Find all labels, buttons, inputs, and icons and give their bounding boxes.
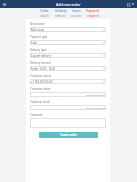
staticText: address <box>55 14 66 18</box>
staticText: in order <box>71 14 82 18</box>
staticText: Delivery interval <box>30 61 51 65</box>
staticText: Create order <box>60 133 77 137</box>
staticText: Select customer <box>86 93 105 96</box>
staticText: details <box>40 14 49 18</box>
button[interactable] <box>30 118 106 128</box>
staticText: Customer phone <box>30 74 52 78</box>
staticText: Delivery type <box>30 48 47 52</box>
staticText: Main shop <box>31 28 102 32</box>
staticText: Comment <box>30 113 43 117</box>
button[interactable]: Cash <box>30 40 106 45</box>
staticText: required <box>87 14 99 18</box>
button[interactable]: Apps <box>126 2 130 6</box>
button[interactable]: Payment <box>86 9 99 18</box>
staticText: Shop name <box>30 22 45 26</box>
staticText: Customer email <box>30 100 51 104</box>
button[interactable]: Delivery <box>54 9 67 18</box>
staticText: Select customer <box>86 106 105 109</box>
button[interactable]: Items <box>70 9 83 18</box>
staticText: Courier delivery <box>31 54 102 58</box>
staticText: Payment <box>86 9 99 13</box>
staticText: Cash <box>31 41 102 45</box>
button[interactable]: Today 10:00 - 14:00 <box>30 66 106 71</box>
staticText: +7 900 000-00-00 <box>31 80 102 84</box>
button[interactable]: Main shop <box>30 27 106 32</box>
staticText: Delivery <box>55 9 67 13</box>
staticText: Order <box>40 9 49 13</box>
staticText: Items <box>72 9 81 13</box>
staticText: Customer name <box>30 87 51 91</box>
button[interactable]: Order <box>38 9 51 18</box>
staticText: Payment type <box>30 35 48 39</box>
button[interactable]: Courier delivery <box>30 53 106 58</box>
button[interactable]: Create order <box>39 132 98 138</box>
staticText: Add new order <box>56 2 81 7</box>
button[interactable]: Menu <box>2 2 7 7</box>
button[interactable]: Select customer <box>30 105 106 110</box>
button[interactable]: +7 900 000-00-00 <box>30 79 106 84</box>
staticText: Today 10:00 - 14:00 <box>31 67 102 71</box>
button[interactable]: Account <box>131 2 135 6</box>
button[interactable]: Select customer <box>30 92 106 97</box>
